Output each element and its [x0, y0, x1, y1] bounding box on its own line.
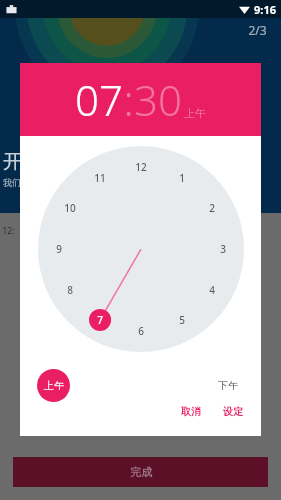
staticText: 9	[56, 242, 62, 256]
button[interactable]: 10	[59, 200, 81, 216]
button[interactable]: 30	[134, 71, 182, 128]
button[interactable]: 8	[59, 282, 81, 298]
staticText: 1	[179, 171, 185, 185]
staticText: 12:	[2, 224, 15, 236]
staticText: 设定	[223, 405, 243, 418]
button[interactable]: 3	[212, 241, 234, 257]
button[interactable]: 取消	[173, 400, 209, 423]
button[interactable]: 设定	[215, 400, 251, 423]
button[interactable]: 完成	[13, 457, 268, 487]
button[interactable]: 9	[48, 241, 70, 257]
staticText: 6	[138, 324, 144, 338]
staticText: 上午	[44, 379, 64, 392]
button[interactable]: 5	[171, 312, 193, 328]
button[interactable]: 4	[201, 282, 223, 298]
button[interactable]: 07	[75, 71, 123, 128]
button[interactable]: 下午	[211, 369, 244, 402]
other: Work profile	[6, 4, 17, 15]
staticText: 11	[94, 171, 106, 185]
staticText: 12	[135, 160, 147, 174]
staticText: 完成	[130, 465, 152, 479]
button[interactable]: 12	[130, 159, 152, 175]
staticText: 取消	[181, 405, 201, 418]
staticText: 下午	[218, 379, 238, 392]
staticText: 我们	[3, 177, 21, 188]
staticText: 9:16	[254, 2, 276, 17]
button[interactable]: 1	[171, 170, 193, 186]
staticText: 2/3	[248, 22, 267, 38]
staticText: 5	[179, 313, 185, 327]
button[interactable]: 2	[201, 200, 223, 216]
button[interactable]: 上午	[184, 106, 206, 120]
staticText: 10	[64, 201, 76, 215]
button[interactable]: 7	[89, 312, 111, 328]
staticText: 3	[220, 242, 226, 256]
button[interactable]: 11	[89, 170, 111, 186]
staticText: :	[123, 71, 134, 128]
button[interactable]: 6	[130, 323, 152, 339]
button[interactable]: 上午	[37, 369, 70, 402]
staticText: 8	[67, 283, 73, 297]
staticText: 7	[97, 313, 103, 327]
staticText: 4	[209, 283, 215, 297]
staticText: 2	[209, 201, 215, 215]
staticText: 开	[3, 150, 22, 174]
